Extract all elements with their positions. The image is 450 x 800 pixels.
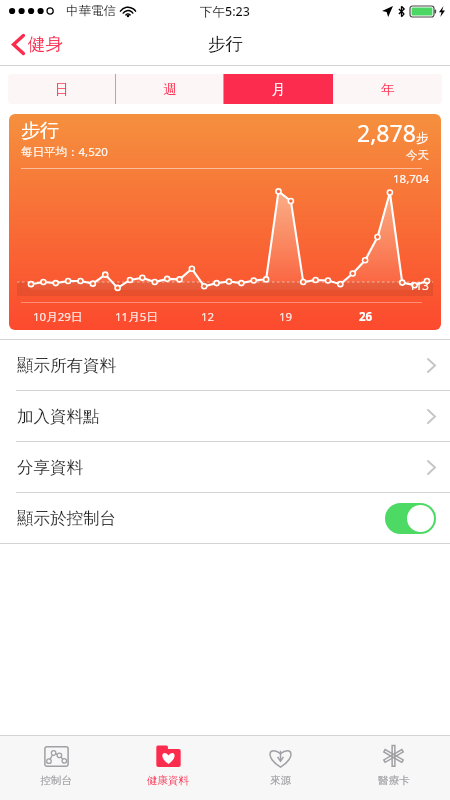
- staticText: 26: [359, 309, 373, 325]
- staticText: 10月29日: [33, 309, 83, 325]
- staticText: 步行: [21, 119, 59, 143]
- staticText: 加入資料點: [17, 406, 100, 427]
- staticText: 健身: [28, 33, 63, 55]
- staticText: 113: [409, 278, 429, 294]
- button[interactable]: 健身: [8, 29, 67, 59]
- staticText: 今天: [406, 148, 429, 162]
- staticText: 步: [416, 130, 429, 146]
- button[interactable]: 顯示所有資料: [0, 340, 450, 390]
- button[interactable]: 顯示於控制台 開關: [385, 503, 436, 534]
- staticText: 週: [163, 81, 177, 98]
- button[interactable]: 來源: [224, 736, 337, 800]
- staticText: 月: [272, 81, 286, 98]
- staticText: 控制台: [40, 774, 72, 787]
- button[interactable]: 加入資料點: [0, 391, 450, 441]
- staticText: 日: [55, 81, 69, 98]
- staticText: 顯示所有資料: [17, 355, 116, 376]
- staticText: 下午5:23: [200, 3, 250, 20]
- staticText: 醫療卡: [378, 774, 410, 787]
- staticText: 每日平均：4,520: [21, 144, 108, 160]
- staticText: 健康資料: [147, 774, 189, 787]
- button[interactable]: 健康資料: [112, 736, 224, 800]
- staticText: 步行: [208, 33, 243, 55]
- button[interactable]: 年: [333, 74, 442, 104]
- staticText: 年: [381, 81, 395, 98]
- staticText: 11月5日: [115, 309, 158, 325]
- staticText: 來源: [270, 774, 291, 787]
- button[interactable]: 顯示於控制台: [0, 493, 450, 543]
- staticText: 分享資料: [17, 457, 83, 478]
- button[interactable]: 分享資料: [0, 442, 450, 492]
- button[interactable]: 控制台: [0, 736, 112, 800]
- staticText: 2,878: [357, 117, 416, 148]
- staticText: 中華電信: [66, 3, 116, 19]
- button[interactable]: 日: [8, 74, 116, 104]
- staticText: 12: [201, 309, 215, 325]
- button[interactable]: 醫療卡: [337, 736, 450, 800]
- staticText: 顯示於控制台: [17, 508, 116, 529]
- staticText: 18,704: [393, 171, 429, 187]
- staticText: 19: [279, 309, 293, 325]
- button[interactable]: 月: [224, 74, 333, 104]
- button[interactable]: 週: [116, 74, 224, 104]
- button[interactable]: 步行: [9, 114, 441, 330]
